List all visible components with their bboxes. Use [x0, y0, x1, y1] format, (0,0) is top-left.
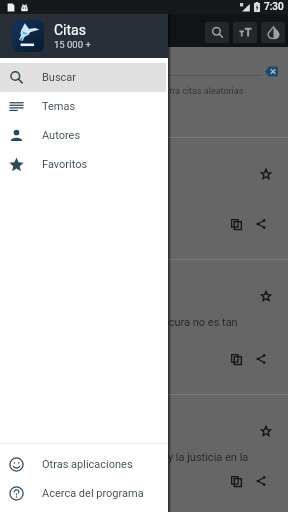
button[interactable]: Theme — [261, 22, 285, 43]
staticText: Otras aplicaciones — [42, 458, 133, 471]
staticText: Autores — [42, 129, 81, 142]
button[interactable]: Otras aplicaciones — [0, 450, 166, 479]
button[interactable]: Acerca del programa — [0, 479, 166, 508]
button[interactable]: Favorite — [0, 137, 288, 259]
button[interactable]: Copy — [228, 351, 244, 367]
button[interactable]: Clear search — [262, 62, 280, 80]
button[interactable]: Buscar — [0, 63, 166, 92]
staticText: 15 000 + — [54, 39, 91, 50]
staticText: El amor, la verdad, y la justicia en la — [77, 451, 288, 464]
button[interactable]: Search — [205, 22, 229, 43]
button[interactable]: Text size — [233, 22, 257, 43]
button[interactable]: Share — [253, 216, 269, 232]
button[interactable]: Copy — [228, 216, 244, 232]
button[interactable]: Favorite — [0, 259, 288, 394]
staticText: 7:30 — [264, 1, 284, 13]
button[interactable]: Share — [253, 351, 269, 367]
staticText: Buscar — [42, 71, 77, 84]
button[interactable]: Copy — [228, 473, 244, 489]
button[interactable]: Favorite — [257, 165, 274, 182]
staticText: Muestra citas aleatorias — [147, 86, 244, 97]
staticText: Acerca del programa — [42, 487, 144, 500]
staticText: Favoritos — [42, 158, 88, 171]
button[interactable]: Autores — [0, 121, 166, 150]
staticText: La diferencia entre el genio y la locura… — [6, 316, 281, 329]
button[interactable]: Favorite — [0, 394, 288, 512]
button[interactable]: Temas — [0, 92, 166, 121]
button[interactable]: Favoritos — [0, 150, 166, 179]
button[interactable]: Favorite — [257, 287, 274, 304]
staticText: Tan solo se que nada se, y ni eso lo se … — [0, 194, 205, 207]
staticText: Citas — [54, 22, 86, 38]
button[interactable]: Favorite — [257, 422, 274, 439]
button[interactable]: Share — [253, 473, 269, 489]
staticText: Temas — [42, 100, 76, 113]
